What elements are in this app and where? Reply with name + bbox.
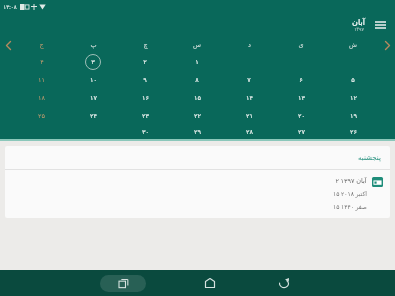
button[interactable]: ۹ (119, 71, 171, 89)
button[interactable]: ۲۸ (223, 125, 275, 139)
button[interactable]: ۱۸ (16, 89, 67, 107)
staticText: ۲۸ (246, 128, 253, 136)
button[interactable]: Home (199, 272, 221, 294)
button[interactable]: ۱۷ (67, 89, 119, 107)
staticText: ۱۱ (38, 76, 45, 84)
button[interactable]: ۲۲ (171, 107, 223, 125)
button[interactable]: Menu (370, 15, 390, 35)
button[interactable]: Previous month (0, 37, 16, 53)
button[interactable]: Next month (379, 37, 395, 53)
staticText: ۲۳ (142, 112, 149, 120)
button[interactable]: ۲۵ (16, 107, 67, 125)
staticText: ۸ (195, 76, 199, 84)
staticText: ۳ (91, 58, 95, 66)
staticText: ۱۳۹۷ (354, 27, 364, 32)
staticText: ۲ (143, 58, 147, 66)
staticText: ۲۷ (298, 128, 305, 136)
button[interactable]: ۱۲ (327, 89, 379, 107)
button[interactable]: ۵ (327, 71, 379, 89)
button[interactable]: ۳۰ (119, 125, 171, 139)
button[interactable]: Recents (100, 275, 146, 292)
staticText: ۱۹ (350, 112, 357, 120)
button[interactable]: ۱۳ (275, 89, 327, 107)
staticText: ۲۹ (194, 128, 201, 136)
button[interactable]: ۱۹ (327, 107, 379, 125)
button[interactable]: ۱ (171, 53, 223, 71)
staticText: ی (298, 41, 304, 49)
staticText: ۱۶ (142, 94, 149, 102)
staticText: ۱۵ اکتبر ۲۰۱۸ (333, 190, 367, 198)
staticText: چ (143, 41, 148, 49)
button[interactable]: ۳ (67, 53, 119, 71)
button[interactable]: ۴ (16, 53, 67, 71)
button[interactable]: Back (273, 272, 295, 294)
button[interactable]: ۲۷ (275, 125, 327, 139)
staticText: ۶ (299, 76, 303, 84)
staticText: س (193, 41, 201, 49)
button[interactable]: ۷ (223, 71, 275, 89)
staticText: ۱۰ (90, 76, 97, 84)
staticText: آبان (352, 18, 365, 27)
staticText: ۱۵ صفر ۱۴۴۰ (333, 203, 367, 211)
button[interactable]: ۲۶ (327, 125, 379, 139)
button[interactable]: ۲۳ (119, 107, 171, 125)
staticText: ۲۴ (90, 112, 97, 120)
staticText: ۱۲ (350, 94, 357, 102)
button[interactable]: ۸ (171, 71, 223, 89)
button[interactable]: ۲۰ (275, 107, 327, 125)
button[interactable]: ۲۴ (67, 107, 119, 125)
staticText: پ (90, 41, 97, 49)
button[interactable]: ۲ (119, 53, 171, 71)
button[interactable]: ۱۶ (119, 89, 171, 107)
button[interactable]: ۶ (275, 71, 327, 89)
button[interactable]: ۱۰ (67, 71, 119, 89)
staticText: ۱۳:۰۸ (3, 3, 17, 10)
button[interactable]: ۲۹ (171, 125, 223, 139)
staticText: ۲۵ (38, 112, 45, 120)
staticText: ۳۰ (142, 128, 149, 136)
button[interactable]: ۱۴ (223, 89, 275, 107)
staticText: ۱۸ (38, 94, 45, 102)
button[interactable]: ۱۵ (171, 89, 223, 107)
button[interactable]: پنجشنبه (5, 146, 390, 218)
staticText: پنجشنبه (358, 154, 381, 162)
button[interactable]: ۱۱ (16, 71, 67, 89)
staticText: ۲۰ (298, 112, 305, 120)
staticText: ۲۶ (350, 128, 357, 136)
staticText: ۵ (351, 76, 355, 84)
staticText: ۲۱ (246, 112, 253, 120)
staticText: ۴ (40, 58, 44, 66)
staticText: ۱۵ (194, 94, 201, 102)
staticText: ج (39, 41, 44, 49)
staticText: ۱۷ (90, 94, 97, 102)
staticText: ۲۲ (194, 112, 201, 120)
staticText: ۷ (247, 76, 251, 84)
button[interactable]: آبان (352, 18, 365, 32)
staticText: ش (349, 41, 357, 49)
staticText: ۱۴ (246, 94, 253, 102)
staticText: ۹ (143, 76, 147, 84)
staticText: ۲ آبان ۱۳۹۷ (335, 176, 367, 185)
staticText: ۱۳ (298, 94, 305, 102)
staticText: ۱ (195, 58, 199, 66)
button[interactable]: ۲۱ (223, 107, 275, 125)
staticText: د (248, 41, 251, 49)
